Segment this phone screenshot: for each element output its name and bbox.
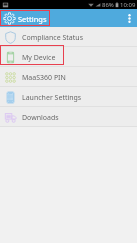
button[interactable]: Downloads xyxy=(0,107,137,126)
button[interactable]: More options xyxy=(122,9,137,27)
button[interactable]: Compliance Status xyxy=(0,27,137,46)
button[interactable]: Launcher Settings xyxy=(0,87,137,106)
staticText: My Device xyxy=(22,53,56,63)
staticText: 86% xyxy=(102,1,114,9)
button[interactable]: MaaS360 PIN xyxy=(0,67,137,86)
staticText: Downloads xyxy=(22,113,59,123)
staticText: Settings xyxy=(18,14,47,24)
staticText: Compliance Status xyxy=(22,33,84,43)
button[interactable]: Settings xyxy=(3,12,47,25)
staticText: MaaS360 PIN xyxy=(22,73,66,83)
staticText: Launcher Settings xyxy=(22,93,82,103)
button[interactable]: My Device xyxy=(0,47,137,66)
staticText: 10:09 xyxy=(120,1,136,9)
